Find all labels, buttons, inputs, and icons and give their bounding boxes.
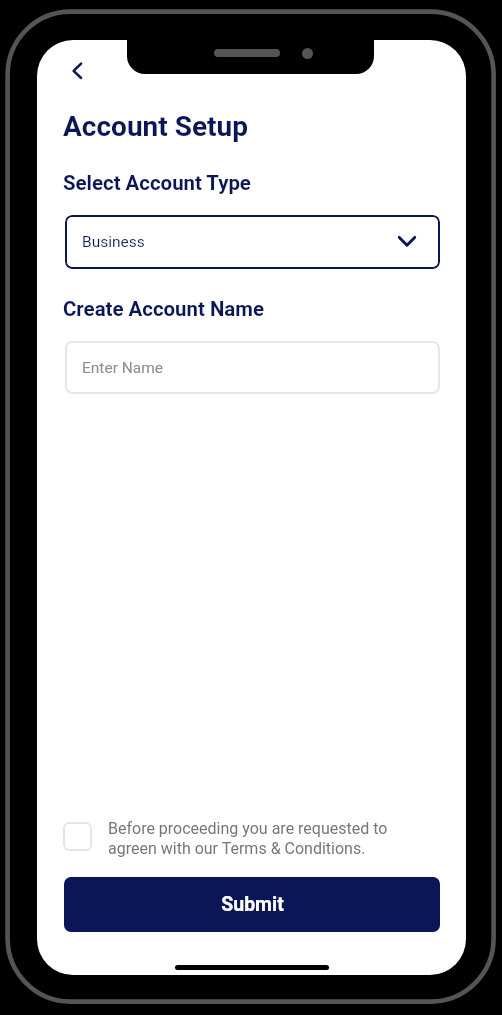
button[interactable]: Submit <box>64 877 440 932</box>
staticText: Create Account Name <box>63 297 264 321</box>
staticText: Enter Name <box>82 359 164 377</box>
staticText: Submit <box>221 893 284 916</box>
button[interactable]: Back <box>65 57 91 83</box>
staticText: Business <box>82 233 145 251</box>
button[interactable]: Before proceeding you are requested to a… <box>63 819 393 858</box>
button[interactable]: Enter Name <box>65 341 440 394</box>
staticText: Select Account Type <box>63 171 251 195</box>
staticText: Before proceeding you are requested to a… <box>108 819 393 858</box>
button[interactable]: Business <box>65 215 440 269</box>
staticText: Account Setup <box>63 110 248 143</box>
